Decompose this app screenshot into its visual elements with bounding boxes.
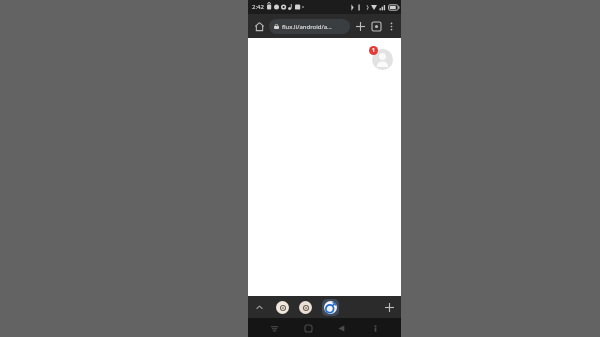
button[interactable]: Home [300, 320, 316, 336]
button[interactable]: More [381, 299, 397, 315]
button[interactable]: Hide keyboard [367, 320, 383, 336]
button[interactable]: Recents [266, 320, 282, 336]
staticText: 2:42 [252, 3, 264, 11]
button[interactable]: More options [384, 19, 398, 33]
staticText: 1 [372, 47, 375, 54]
button[interactable]: Switch tabs [368, 18, 384, 34]
button[interactable]: Home [251, 18, 267, 34]
button[interactable]: New tab [352, 18, 368, 34]
button[interactable]: Clipboard [276, 301, 289, 314]
button[interactable]: Search or type URL [269, 19, 350, 34]
staticText: flux.li/android/a… [282, 23, 332, 31]
button[interactable]: Expand suggestions [252, 300, 266, 314]
button[interactable]: Back [333, 320, 349, 336]
button[interactable]: GIF [299, 301, 312, 314]
button[interactable]: App shortcut [322, 299, 339, 316]
button[interactable]: Account [369, 46, 393, 70]
